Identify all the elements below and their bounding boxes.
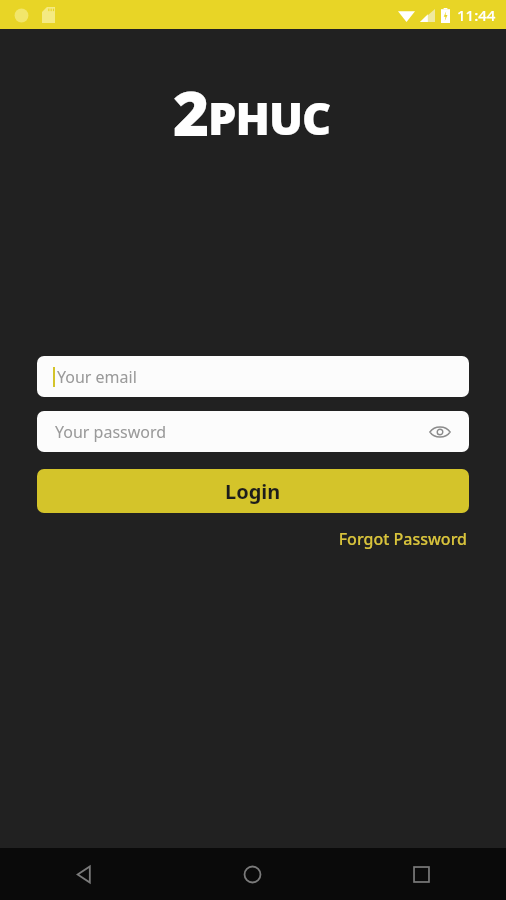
staticText: Forgot Password	[338, 528, 467, 550]
staticText: Your password	[55, 421, 167, 443]
staticText: Your email	[57, 366, 137, 388]
button[interactable]: Login	[37, 469, 469, 513]
button[interactable]: Your password	[37, 411, 469, 452]
button[interactable]: Recent apps	[337, 848, 506, 900]
staticText: 2	[173, 70, 210, 154]
staticText: PHUC	[208, 87, 331, 148]
button[interactable]: Show password	[425, 417, 455, 447]
button[interactable]: Your email	[37, 356, 469, 397]
button[interactable]: Back	[0, 848, 168, 900]
button[interactable]: Home	[168, 848, 337, 900]
staticText: 11:44	[457, 5, 496, 25]
staticText: Login	[225, 478, 281, 505]
button[interactable]: Forgot Password	[336, 524, 469, 554]
